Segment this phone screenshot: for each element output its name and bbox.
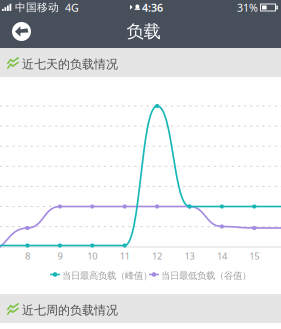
staticText: 11 (120, 250, 130, 262)
staticText: 当日最高负载（峰值） (62, 270, 152, 281)
staticText: 31% (237, 0, 258, 15)
staticText: 10 (87, 250, 97, 262)
staticText: 近七天的负载情况 (22, 57, 118, 72)
staticText: 13 (184, 250, 194, 262)
staticText: 9 (57, 250, 62, 262)
staticText: 15 (249, 250, 259, 262)
staticText: 8 (25, 250, 30, 262)
staticText: 当日最低负载（谷值） (161, 270, 251, 281)
staticText: 4:36 (142, 0, 163, 15)
staticText: 中国移动 (12, 1, 59, 14)
staticText: 近七周的负载情况 (22, 303, 118, 318)
button[interactable]: Back (0, 15, 40, 48)
staticText: 14 (217, 250, 227, 262)
staticText: 4G (59, 0, 79, 15)
staticText: 12 (152, 250, 162, 262)
staticText: 负载 (126, 21, 160, 42)
